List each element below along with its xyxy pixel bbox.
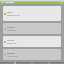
- staticText: Overview: [5, 1, 60, 4]
- staticText: Settings: [7, 52, 15, 55]
- button[interactable]: Inbox: [3, 6, 61, 21]
- staticText: Older entries: [7, 42, 17, 44]
- button[interactable]: Search: [60, 1, 63, 4]
- button[interactable]: Menu: [1, 1, 4, 4]
- button[interactable]: Home: [13, 62, 17, 64]
- button[interactable]: Lists: [30, 62, 34, 64]
- button[interactable]: Archive: [3, 36, 61, 47]
- staticText: Updated just now: [7, 14, 20, 16]
- button[interactable]: You: [47, 62, 51, 64]
- button[interactable]: Settings: [3, 49, 61, 60]
- staticText: Projects: [7, 26, 15, 29]
- staticText: Account & sync: [7, 55, 18, 57]
- staticText: 4 active items: [7, 29, 17, 31]
- staticText: Archive: [7, 39, 15, 42]
- button[interactable]: Projects: [3, 23, 61, 34]
- staticText: Inbox: [7, 11, 13, 14]
